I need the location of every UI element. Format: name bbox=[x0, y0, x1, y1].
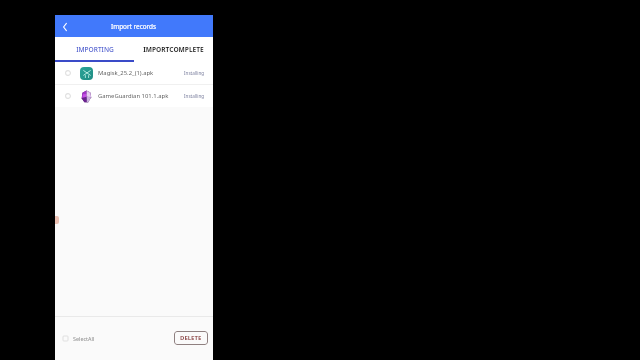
button[interactable]: DELETE bbox=[174, 331, 208, 345]
button[interactable]: Select GameGuardian 101.1.apk bbox=[55, 85, 213, 107]
staticText: Installing bbox=[184, 70, 205, 76]
button[interactable]: Back bbox=[56, 18, 74, 36]
staticText: Magisk_25.2_(1).apk bbox=[98, 69, 184, 77]
button[interactable]: Select Magisk_25.2_(1).apk bbox=[55, 62, 213, 84]
staticText: Installing bbox=[184, 93, 205, 99]
button[interactable]: Side handle bbox=[55, 216, 59, 224]
staticText: IMPORTCOMPLETE bbox=[143, 45, 204, 54]
staticText: SelectAll bbox=[73, 335, 95, 342]
button[interactable]: Select GameGuardian 101.1.apk bbox=[58, 85, 78, 107]
button[interactable]: IMPORTCOMPLETE bbox=[134, 37, 213, 62]
staticText: IMPORTING bbox=[76, 45, 114, 54]
staticText: GameGuardian 101.1.apk bbox=[98, 92, 184, 100]
button[interactable]: Select Magisk_25.2_(1).apk bbox=[58, 62, 78, 84]
button[interactable]: IMPORTING bbox=[55, 37, 134, 62]
button[interactable]: SelectAll bbox=[63, 332, 95, 345]
staticText: DELETE bbox=[180, 334, 202, 342]
staticText: Import records bbox=[111, 22, 157, 31]
